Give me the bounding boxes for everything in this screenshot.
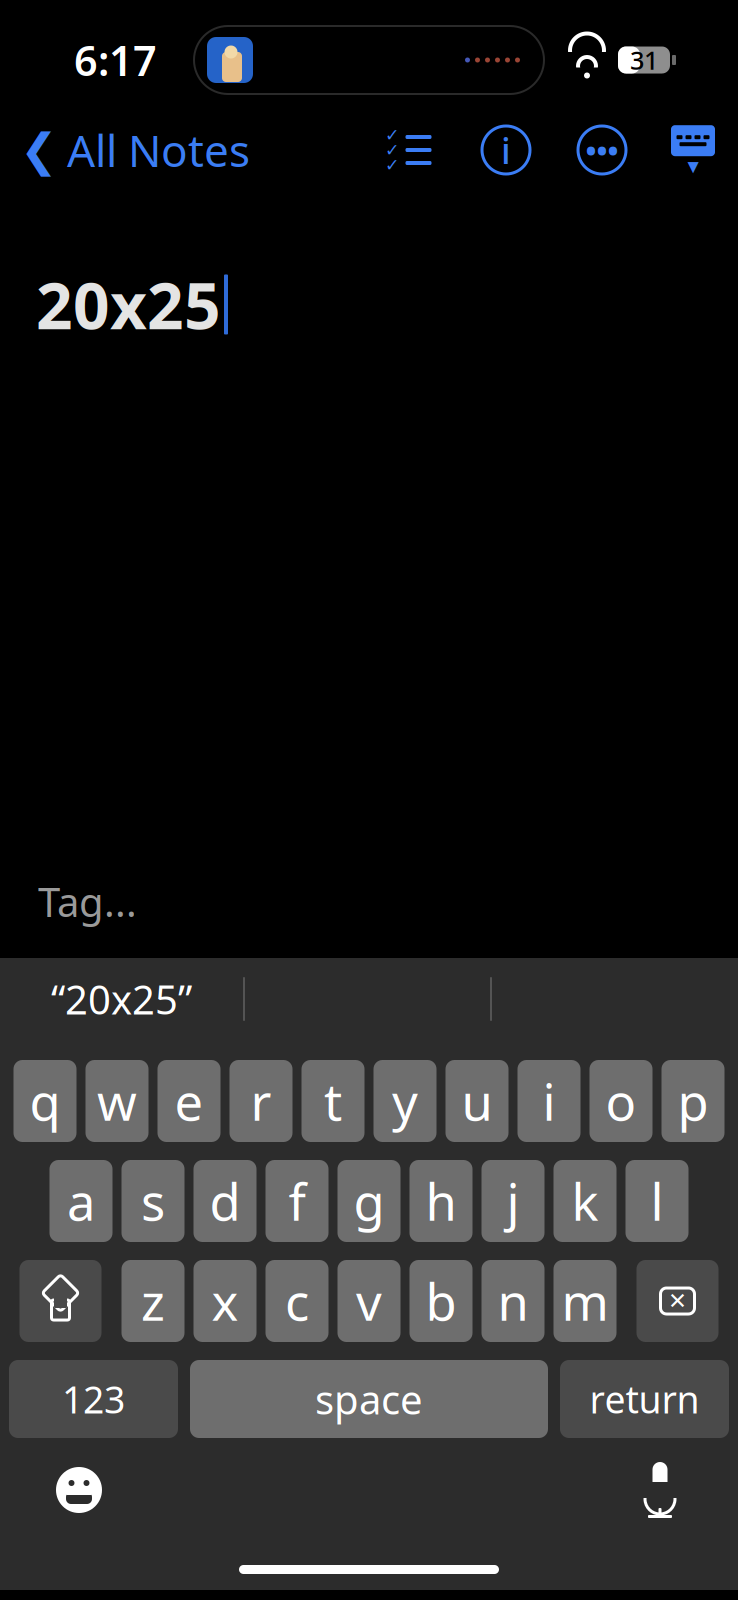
staticText: p bbox=[677, 1067, 708, 1135]
staticText: space bbox=[315, 1372, 423, 1425]
button[interactable]: Info bbox=[482, 126, 530, 174]
button[interactable]: 123 bbox=[9, 1360, 178, 1438]
button[interactable]: More bbox=[578, 126, 626, 174]
button[interactable]: o bbox=[589, 1060, 652, 1142]
button[interactable]: p bbox=[661, 1060, 724, 1142]
staticText: 31 bbox=[630, 43, 658, 77]
staticText: “20x25” bbox=[51, 972, 192, 1025]
button[interactable]: b bbox=[409, 1260, 472, 1342]
button[interactable]: n bbox=[481, 1260, 544, 1342]
button[interactable]: Dictate bbox=[640, 1461, 680, 1519]
button[interactable]: k bbox=[553, 1160, 616, 1242]
staticText: m bbox=[561, 1267, 608, 1335]
button[interactable]: j bbox=[481, 1160, 544, 1242]
button[interactable]: Emoji bbox=[54, 1465, 104, 1515]
staticText: x bbox=[211, 1267, 238, 1335]
button[interactable]: d bbox=[193, 1160, 256, 1242]
staticText: w bbox=[97, 1067, 137, 1135]
button[interactable]: w bbox=[85, 1060, 148, 1142]
staticText: ▼ bbox=[687, 158, 698, 175]
button[interactable]: y bbox=[373, 1060, 436, 1142]
staticText: return bbox=[589, 1374, 699, 1424]
staticText: h bbox=[425, 1167, 456, 1235]
staticText: d bbox=[209, 1167, 240, 1235]
button[interactable]: Shift bbox=[19, 1260, 101, 1342]
staticText: u bbox=[461, 1067, 492, 1135]
staticText: e bbox=[174, 1067, 203, 1135]
staticText: ✓ bbox=[385, 125, 400, 145]
staticText: ✓ bbox=[385, 140, 400, 160]
staticText: ❮ bbox=[20, 124, 58, 176]
button[interactable]: q bbox=[13, 1060, 76, 1142]
button[interactable]: c bbox=[265, 1260, 328, 1342]
button[interactable]: x bbox=[193, 1260, 256, 1342]
button[interactable]: g bbox=[337, 1160, 400, 1242]
button[interactable]: z bbox=[121, 1260, 184, 1342]
staticText: i bbox=[501, 126, 511, 174]
staticText: y bbox=[392, 1067, 418, 1135]
staticText: c bbox=[285, 1267, 309, 1335]
button[interactable]: “20x25” bbox=[0, 962, 243, 1036]
staticText: o bbox=[605, 1067, 636, 1135]
button[interactable]: ❮ bbox=[0, 113, 250, 187]
button[interactable]: l bbox=[625, 1160, 688, 1242]
staticText: 6:17 bbox=[74, 33, 157, 87]
staticText: s bbox=[141, 1167, 165, 1235]
staticText: n bbox=[497, 1267, 528, 1335]
staticText: r bbox=[250, 1067, 271, 1135]
staticText: All Notes bbox=[67, 121, 250, 179]
staticText: i bbox=[542, 1067, 555, 1135]
staticText: g bbox=[353, 1167, 384, 1235]
button[interactable]: f bbox=[265, 1160, 328, 1242]
staticText: 20x25 bbox=[36, 262, 221, 347]
button[interactable]: a bbox=[49, 1160, 112, 1242]
button[interactable]: m bbox=[553, 1260, 616, 1342]
staticText: b bbox=[425, 1267, 456, 1335]
button[interactable]: Hide Keyboard bbox=[668, 125, 718, 175]
staticText: ✓ bbox=[385, 155, 400, 175]
staticText: 123 bbox=[62, 1374, 125, 1424]
button[interactable]: Checklist bbox=[384, 131, 434, 169]
button[interactable]: s bbox=[121, 1160, 184, 1242]
staticText: a bbox=[67, 1167, 95, 1235]
staticText: z bbox=[141, 1267, 165, 1335]
staticText: ••• bbox=[585, 130, 618, 169]
staticText: k bbox=[571, 1167, 598, 1235]
button[interactable]: u bbox=[445, 1060, 508, 1142]
button[interactable]: v bbox=[337, 1260, 400, 1342]
button[interactable]: t bbox=[301, 1060, 364, 1142]
staticText: Tag... bbox=[38, 875, 137, 928]
button[interactable]: space bbox=[190, 1360, 548, 1438]
staticText: q bbox=[29, 1067, 60, 1135]
staticText: f bbox=[288, 1167, 305, 1235]
staticText: v bbox=[356, 1267, 382, 1335]
button[interactable]: return bbox=[560, 1360, 729, 1438]
button[interactable]: h bbox=[409, 1160, 472, 1242]
staticText: ✕ bbox=[668, 1288, 687, 1314]
button[interactable]: Delete bbox=[636, 1260, 718, 1342]
button[interactable]: r bbox=[229, 1060, 292, 1142]
staticText: t bbox=[324, 1067, 342, 1135]
staticText: l bbox=[650, 1167, 663, 1235]
button[interactable]: e bbox=[157, 1060, 220, 1142]
staticText: j bbox=[506, 1167, 519, 1235]
button[interactable]: i bbox=[517, 1060, 580, 1142]
